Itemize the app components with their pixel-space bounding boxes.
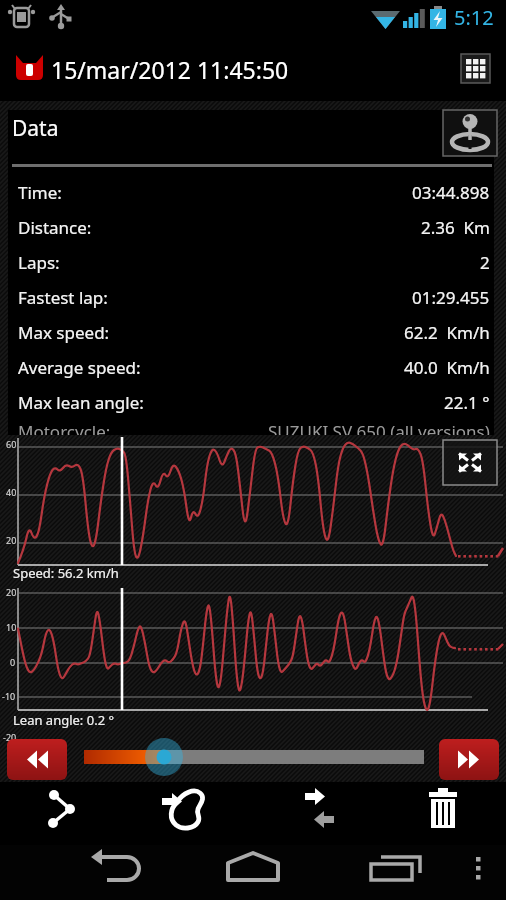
staticText: Distance: <box>18 216 92 239</box>
staticText: 20 <box>6 586 17 598</box>
staticText: 60 <box>6 438 17 450</box>
button[interactable]: Average speed: <box>8 350 494 385</box>
staticText: 01:29.455 <box>412 286 490 309</box>
button[interactable] <box>402 782 484 845</box>
button[interactable] <box>443 440 497 485</box>
staticText: Max speed: <box>18 321 110 344</box>
button[interactable] <box>461 54 490 83</box>
staticText: -20 <box>3 731 17 743</box>
staticText: 0 <box>10 656 16 668</box>
staticText: 20 <box>6 534 17 546</box>
staticText: SUZUKI SV 650 (all versions) <box>268 420 490 435</box>
staticText: 62.2 Km/h <box>404 321 490 344</box>
staticText: -10 <box>2 690 16 702</box>
staticText: Motorcycle: <box>18 420 111 435</box>
staticText: Average speed: <box>18 356 141 379</box>
button[interactable] <box>149 782 231 845</box>
staticText: Speed: 56.2 km/h <box>13 564 119 582</box>
staticText: 40 <box>6 486 17 498</box>
button[interactable]: Max speed: <box>8 315 494 350</box>
button[interactable]: Fastest lap: <box>8 280 494 315</box>
staticText: Lean angle: 0.2 ° <box>13 711 115 729</box>
staticText: 2.36 Km <box>421 216 490 239</box>
button[interactable]: Motorcycle: <box>8 420 494 435</box>
staticText: 10 <box>6 621 17 633</box>
button[interactable] <box>218 845 288 900</box>
staticText: 15/mar/2012 11:45:50 <box>51 54 289 85</box>
button[interactable] <box>22 782 104 845</box>
button[interactable]: Distance: <box>8 210 494 245</box>
button[interactable] <box>460 845 500 900</box>
button[interactable]: Time: <box>8 175 494 210</box>
button[interactable]: Laps: <box>8 245 494 280</box>
staticText: 40.0 Km/h <box>404 356 490 379</box>
button[interactable] <box>275 782 357 845</box>
staticText: Max lean angle: <box>18 391 144 414</box>
staticText: Data <box>12 114 59 143</box>
staticText: 03:44.898 <box>412 181 490 204</box>
button[interactable] <box>7 739 67 780</box>
staticText: 22.1 ° <box>444 391 490 414</box>
staticText: Time: <box>18 181 62 204</box>
button[interactable] <box>439 739 499 780</box>
button[interactable] <box>355 845 425 900</box>
button[interactable] <box>75 845 145 900</box>
button[interactable] <box>78 736 430 778</box>
staticText: Laps: <box>18 251 60 274</box>
button[interactable] <box>443 110 497 156</box>
staticText: Fastest lap: <box>18 286 108 309</box>
staticText: 5:12 <box>454 4 494 31</box>
staticText: 2 <box>480 251 490 274</box>
button[interactable]: Max lean angle: <box>8 385 494 420</box>
